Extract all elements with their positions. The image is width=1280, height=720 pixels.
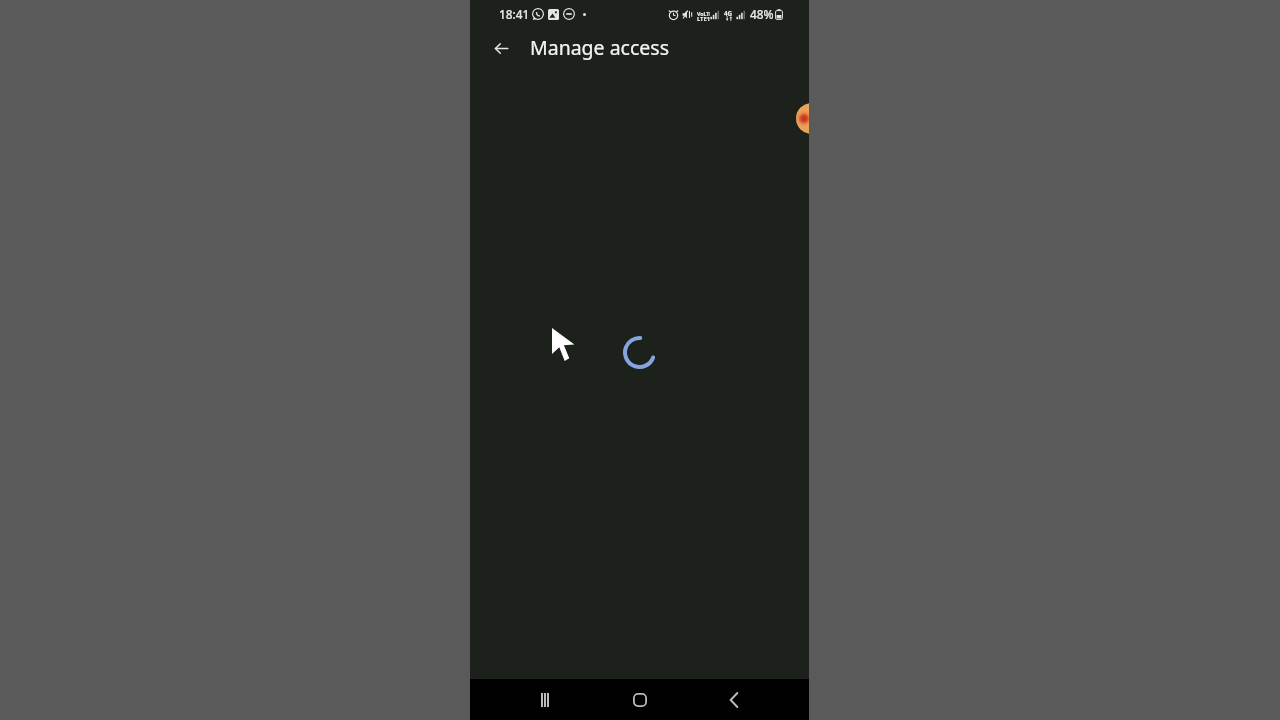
button[interactable]: Navigate up: [486, 33, 516, 63]
button[interactable]: Back: [710, 679, 758, 720]
staticText: Manage access: [530, 34, 670, 61]
button[interactable]: Recent apps: [521, 679, 569, 720]
staticText: VoLTE: [697, 10, 710, 17]
staticText: 48%: [750, 6, 774, 22]
staticText: 4G: [724, 9, 733, 17]
staticText: LTE1: [697, 15, 710, 23]
button[interactable]: Home: [616, 679, 664, 720]
staticText: 18:41: [499, 6, 530, 22]
